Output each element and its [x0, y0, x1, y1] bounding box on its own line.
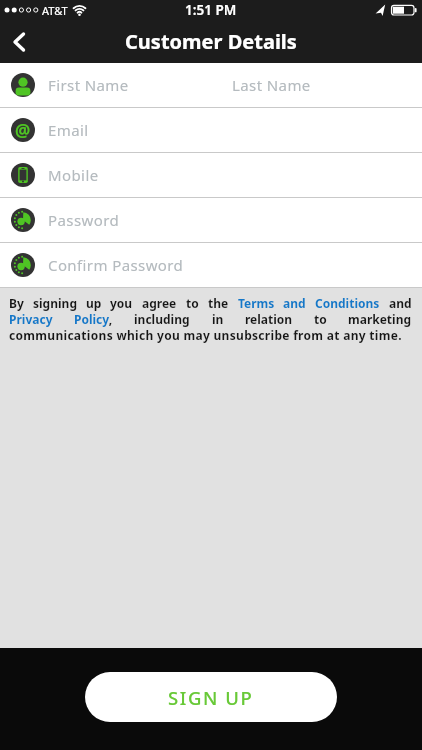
button[interactable]: @ [0, 108, 422, 152]
staticText: By [9, 295, 24, 311]
staticText: and [389, 295, 412, 311]
staticText: First Name [48, 75, 129, 95]
button[interactable]: Mobile [0, 153, 422, 197]
staticText: Privacy [9, 311, 53, 327]
button[interactable]: Confirm Password [0, 243, 422, 287]
staticText: Terms [238, 295, 275, 311]
button[interactable]: First Name [0, 63, 422, 107]
staticText: marketing [348, 311, 412, 327]
staticText: Password [48, 210, 120, 230]
staticText: Last Name [232, 75, 311, 95]
staticText: you [110, 295, 133, 311]
staticText: in [212, 311, 224, 327]
staticText: Mobile [48, 165, 99, 185]
staticText: to [186, 295, 199, 311]
button[interactable]: Password [0, 198, 422, 242]
button[interactable]: SIGN UP [85, 672, 337, 722]
staticText: Confirm Password [48, 255, 184, 275]
staticText: AT&T [42, 3, 68, 18]
staticText: signing [33, 295, 77, 311]
staticText: Email [48, 120, 89, 140]
staticText: and [283, 295, 306, 311]
staticText: relation [245, 311, 293, 327]
staticText: @ [15, 119, 31, 142]
staticText: agree [142, 295, 177, 311]
staticText: Conditions [315, 295, 380, 311]
staticText: including [134, 311, 190, 327]
staticText: the [208, 295, 229, 311]
staticText: 1:51 PM [185, 1, 237, 19]
staticText: Customer Details [125, 28, 297, 55]
staticText: communications which you may unsubscribe… [9, 327, 402, 343]
staticText: SIGN UP [168, 685, 254, 710]
staticText: Policy, [74, 311, 113, 327]
staticText: up [86, 295, 102, 311]
button[interactable] [0, 22, 40, 62]
staticText: to [314, 311, 327, 327]
